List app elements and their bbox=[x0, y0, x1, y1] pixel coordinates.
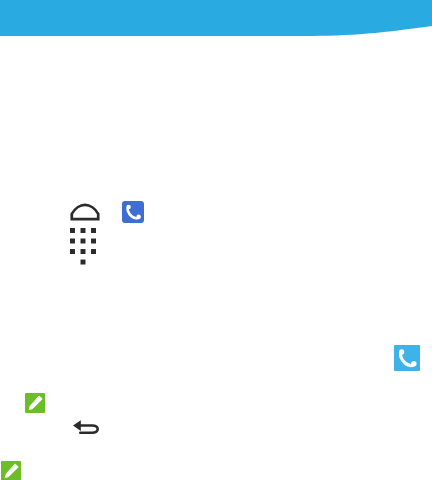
button[interactable]: Edit bbox=[25, 393, 45, 413]
button[interactable]: Dialpad bbox=[70, 228, 96, 252]
button[interactable]: Header bbox=[0, 0, 432, 44]
button[interactable]: Phone app bbox=[122, 201, 144, 223]
button[interactable]: Back bbox=[73, 420, 99, 436]
button[interactable]: Call bbox=[394, 345, 420, 371]
button[interactable]: Home bbox=[70, 203, 100, 221]
button[interactable]: Compose bbox=[1, 461, 21, 480]
